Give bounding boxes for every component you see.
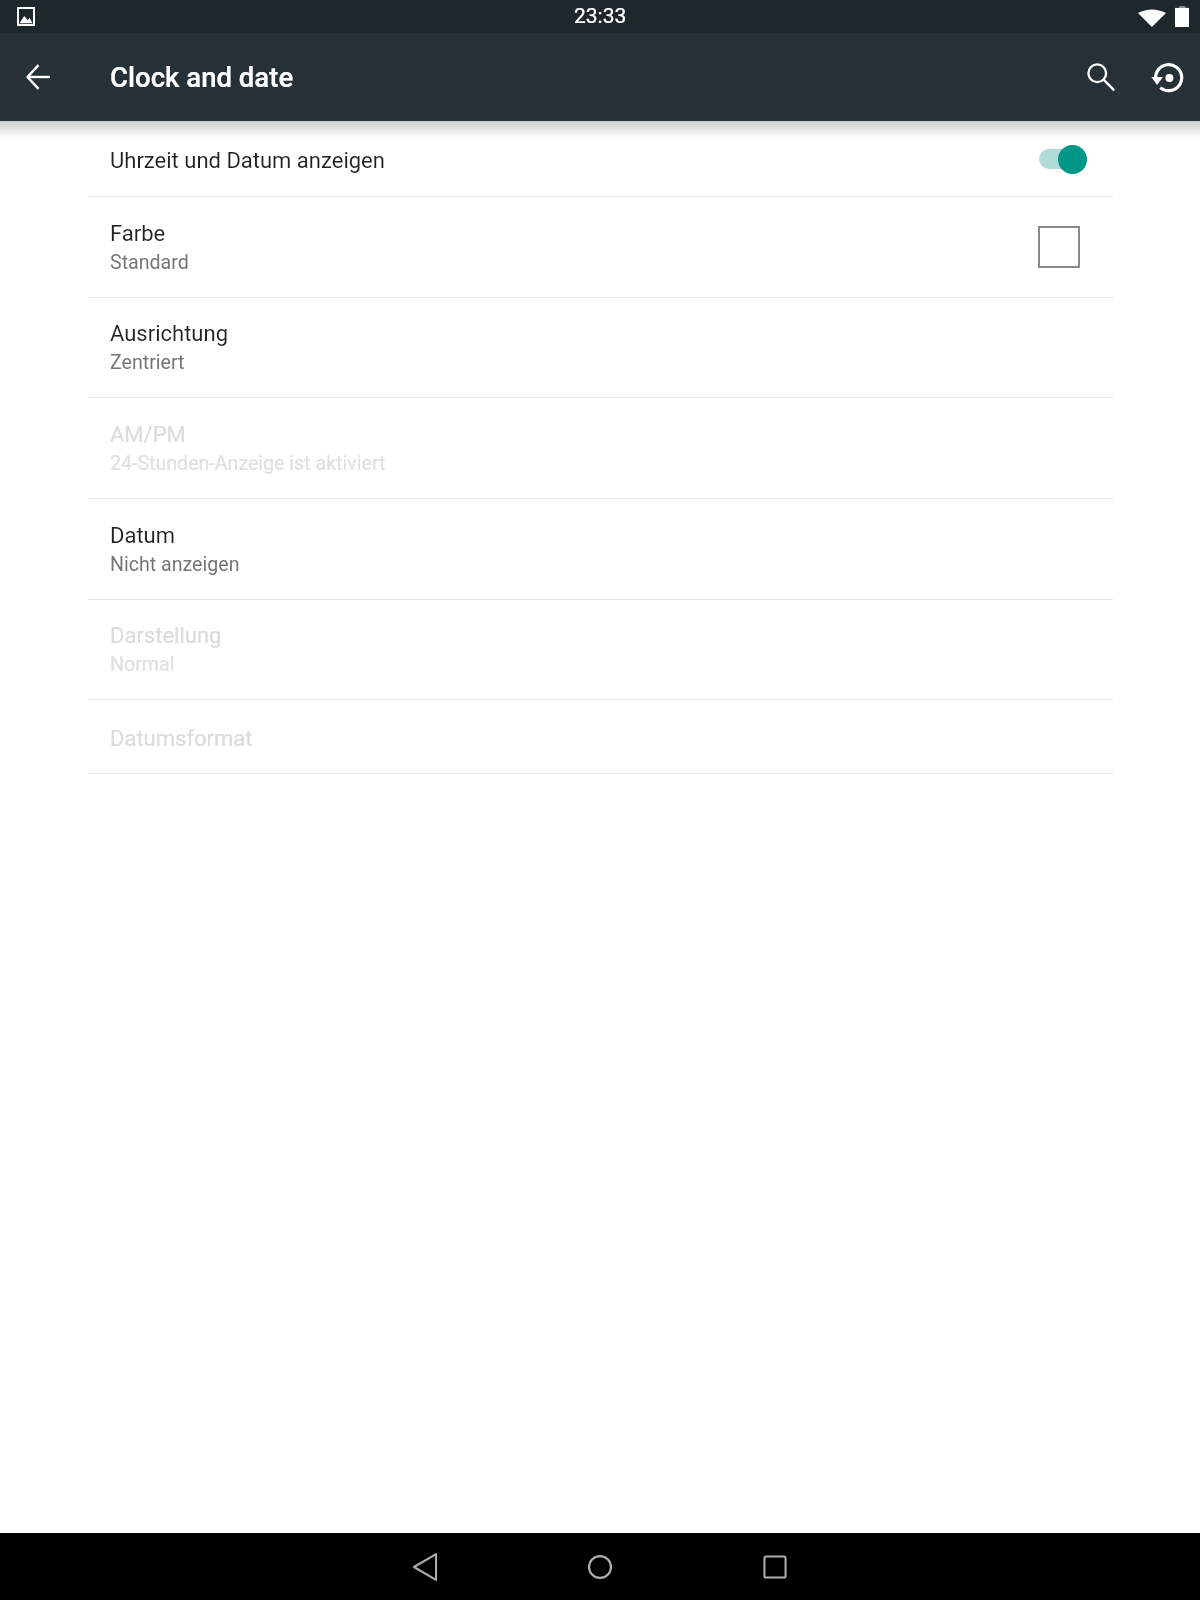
button[interactable]: Search bbox=[1068, 33, 1134, 121]
button[interactable]: Darstellung bbox=[0, 600, 1200, 700]
staticText: Ausrichtung bbox=[110, 321, 228, 347]
staticText: AM/PM bbox=[110, 422, 186, 448]
button[interactable]: Farbe bbox=[0, 197, 1200, 298]
staticText: Uhrzeit und Datum anzeigen bbox=[110, 148, 385, 174]
button[interactable]: Back bbox=[369, 1533, 481, 1600]
button[interactable]: Datumsformat bbox=[0, 700, 1200, 774]
staticText: 24-Stunden-Anzeige ist aktiviert bbox=[110, 452, 386, 475]
button[interactable]: Restore defaults bbox=[1134, 33, 1200, 121]
staticText: Clock and date bbox=[110, 61, 294, 93]
staticText: Zentriert bbox=[110, 351, 185, 374]
button[interactable]: Show time and date bbox=[1039, 135, 1093, 183]
staticText: Datumsformat bbox=[110, 726, 253, 752]
button[interactable]: Navigate up bbox=[0, 33, 76, 121]
staticText: Nicht anzeigen bbox=[110, 553, 240, 576]
staticText: Normal bbox=[110, 653, 175, 676]
button[interactable]: Ausrichtung bbox=[0, 298, 1200, 398]
button[interactable]: Colour bbox=[1038, 226, 1080, 268]
button[interactable]: Home bbox=[544, 1533, 656, 1600]
staticText: Darstellung bbox=[110, 623, 222, 649]
staticText: 23:33 bbox=[574, 4, 627, 29]
staticText: Datum bbox=[110, 523, 176, 549]
button[interactable]: Datum bbox=[0, 499, 1200, 600]
staticText: Standard bbox=[110, 251, 189, 274]
button[interactable]: Uhrzeit und Datum anzeigen bbox=[0, 121, 1200, 197]
staticText: Farbe bbox=[110, 221, 166, 247]
button[interactable]: AM/PM bbox=[0, 398, 1200, 499]
button[interactable]: Recent apps bbox=[719, 1533, 831, 1600]
